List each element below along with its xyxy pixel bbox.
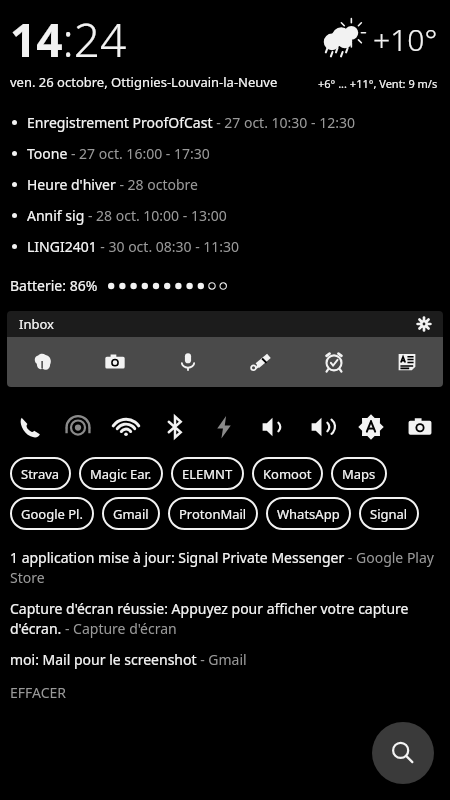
- button[interactable]: Enregistrement ProofOfCast - 27 oct. 10:…: [0, 107, 450, 138]
- staticText: LINGI2401 - 30 oct. 08:30 - 11:30: [27, 237, 240, 256]
- button[interactable]: Komoot: [252, 457, 323, 490]
- button[interactable]: Magic Ear.: [79, 457, 163, 490]
- button[interactable]: Text note: [370, 337, 443, 387]
- button[interactable]: ProtonMail: [168, 497, 258, 530]
- button[interactable]: Camera: [395, 407, 444, 447]
- button[interactable]: Strava: [10, 457, 71, 490]
- button[interactable]: Volume up: [297, 407, 346, 447]
- staticText: EFFACER: [10, 683, 67, 702]
- button[interactable]: Annif sig - 28 oct. 10:00 - 13:00: [0, 200, 450, 231]
- staticText: Komoot: [263, 465, 312, 483]
- staticText: Strava: [21, 465, 60, 483]
- button[interactable]: Capture d'écran réussie: Appuyez pour af…: [10, 599, 440, 638]
- staticText: WhatsApp: [277, 505, 340, 523]
- button[interactable]: Evernote: [7, 337, 79, 387]
- button[interactable]: WhatsApp: [266, 497, 351, 530]
- button[interactable]: Gmail: [102, 497, 160, 530]
- staticText: Maps: [342, 465, 376, 483]
- button[interactable]: Volume down: [248, 407, 297, 447]
- button[interactable]: LINGI2401 - 30 oct. 08:30 - 11:30: [0, 231, 450, 262]
- button[interactable]: Phone: [6, 407, 54, 447]
- staticText: Inbox: [19, 315, 54, 333]
- staticText: Annif sig - 28 oct. 10:00 - 13:00: [27, 206, 227, 225]
- staticText: ProtonMail: [179, 505, 247, 523]
- staticText: +10°: [373, 19, 438, 60]
- staticText: Enregistrement ProofOfCast - 27 oct. 10:…: [27, 113, 355, 132]
- button[interactable]: Voice note: [151, 337, 224, 387]
- button[interactable]: Wi-Fi: [102, 407, 150, 447]
- button[interactable]: Reminder: [297, 337, 370, 387]
- staticText: Signal: [370, 505, 408, 523]
- button[interactable]: moi: Mail pour le screenshot - Gmail: [10, 650, 440, 669]
- staticText: Magic Ear.: [90, 465, 152, 483]
- button[interactable]: Camera: [79, 337, 151, 387]
- button[interactable]: Flashlight: [199, 407, 248, 447]
- button[interactable]: Maps: [331, 457, 387, 490]
- button[interactable]: Auto brightness: [346, 407, 395, 447]
- staticText: ELEMNT: [182, 465, 233, 483]
- other: Settings: [417, 317, 431, 331]
- button[interactable]: 1 application mise à jour: Signal Privat…: [10, 548, 440, 587]
- staticText: Gmail: [113, 505, 149, 523]
- staticText: ven. 26 octobre, Ottignies-Louvain-la-Ne…: [10, 73, 278, 91]
- staticText: Batterie: 86%: [10, 276, 98, 295]
- button[interactable]: EFFACER: [10, 683, 67, 702]
- staticText: 14:24: [10, 8, 127, 71]
- button[interactable]: Toone - 27 oct. 16:00 - 17:30: [0, 138, 450, 169]
- staticText: +6° ... +11°, Vent: 9 m/s: [318, 76, 438, 91]
- staticText: Toone - 27 oct. 16:00 - 17:30: [27, 144, 210, 163]
- staticText: Google Pl.: [21, 505, 83, 523]
- button[interactable]: Search: [372, 722, 434, 784]
- button[interactable]: Bluetooth: [150, 407, 199, 447]
- button[interactable]: Google Pl.: [10, 497, 94, 530]
- button[interactable]: Draw note: [224, 337, 297, 387]
- button[interactable]: Heure d'hiver - 28 octobre: [0, 169, 450, 200]
- button[interactable]: ELEMNT: [171, 457, 244, 490]
- button[interactable]: Inbox: [7, 311, 443, 337]
- button[interactable]: Hotspot: [54, 407, 102, 447]
- button[interactable]: Signal: [359, 497, 419, 530]
- staticText: Heure d'hiver - 28 octobre: [27, 175, 198, 194]
